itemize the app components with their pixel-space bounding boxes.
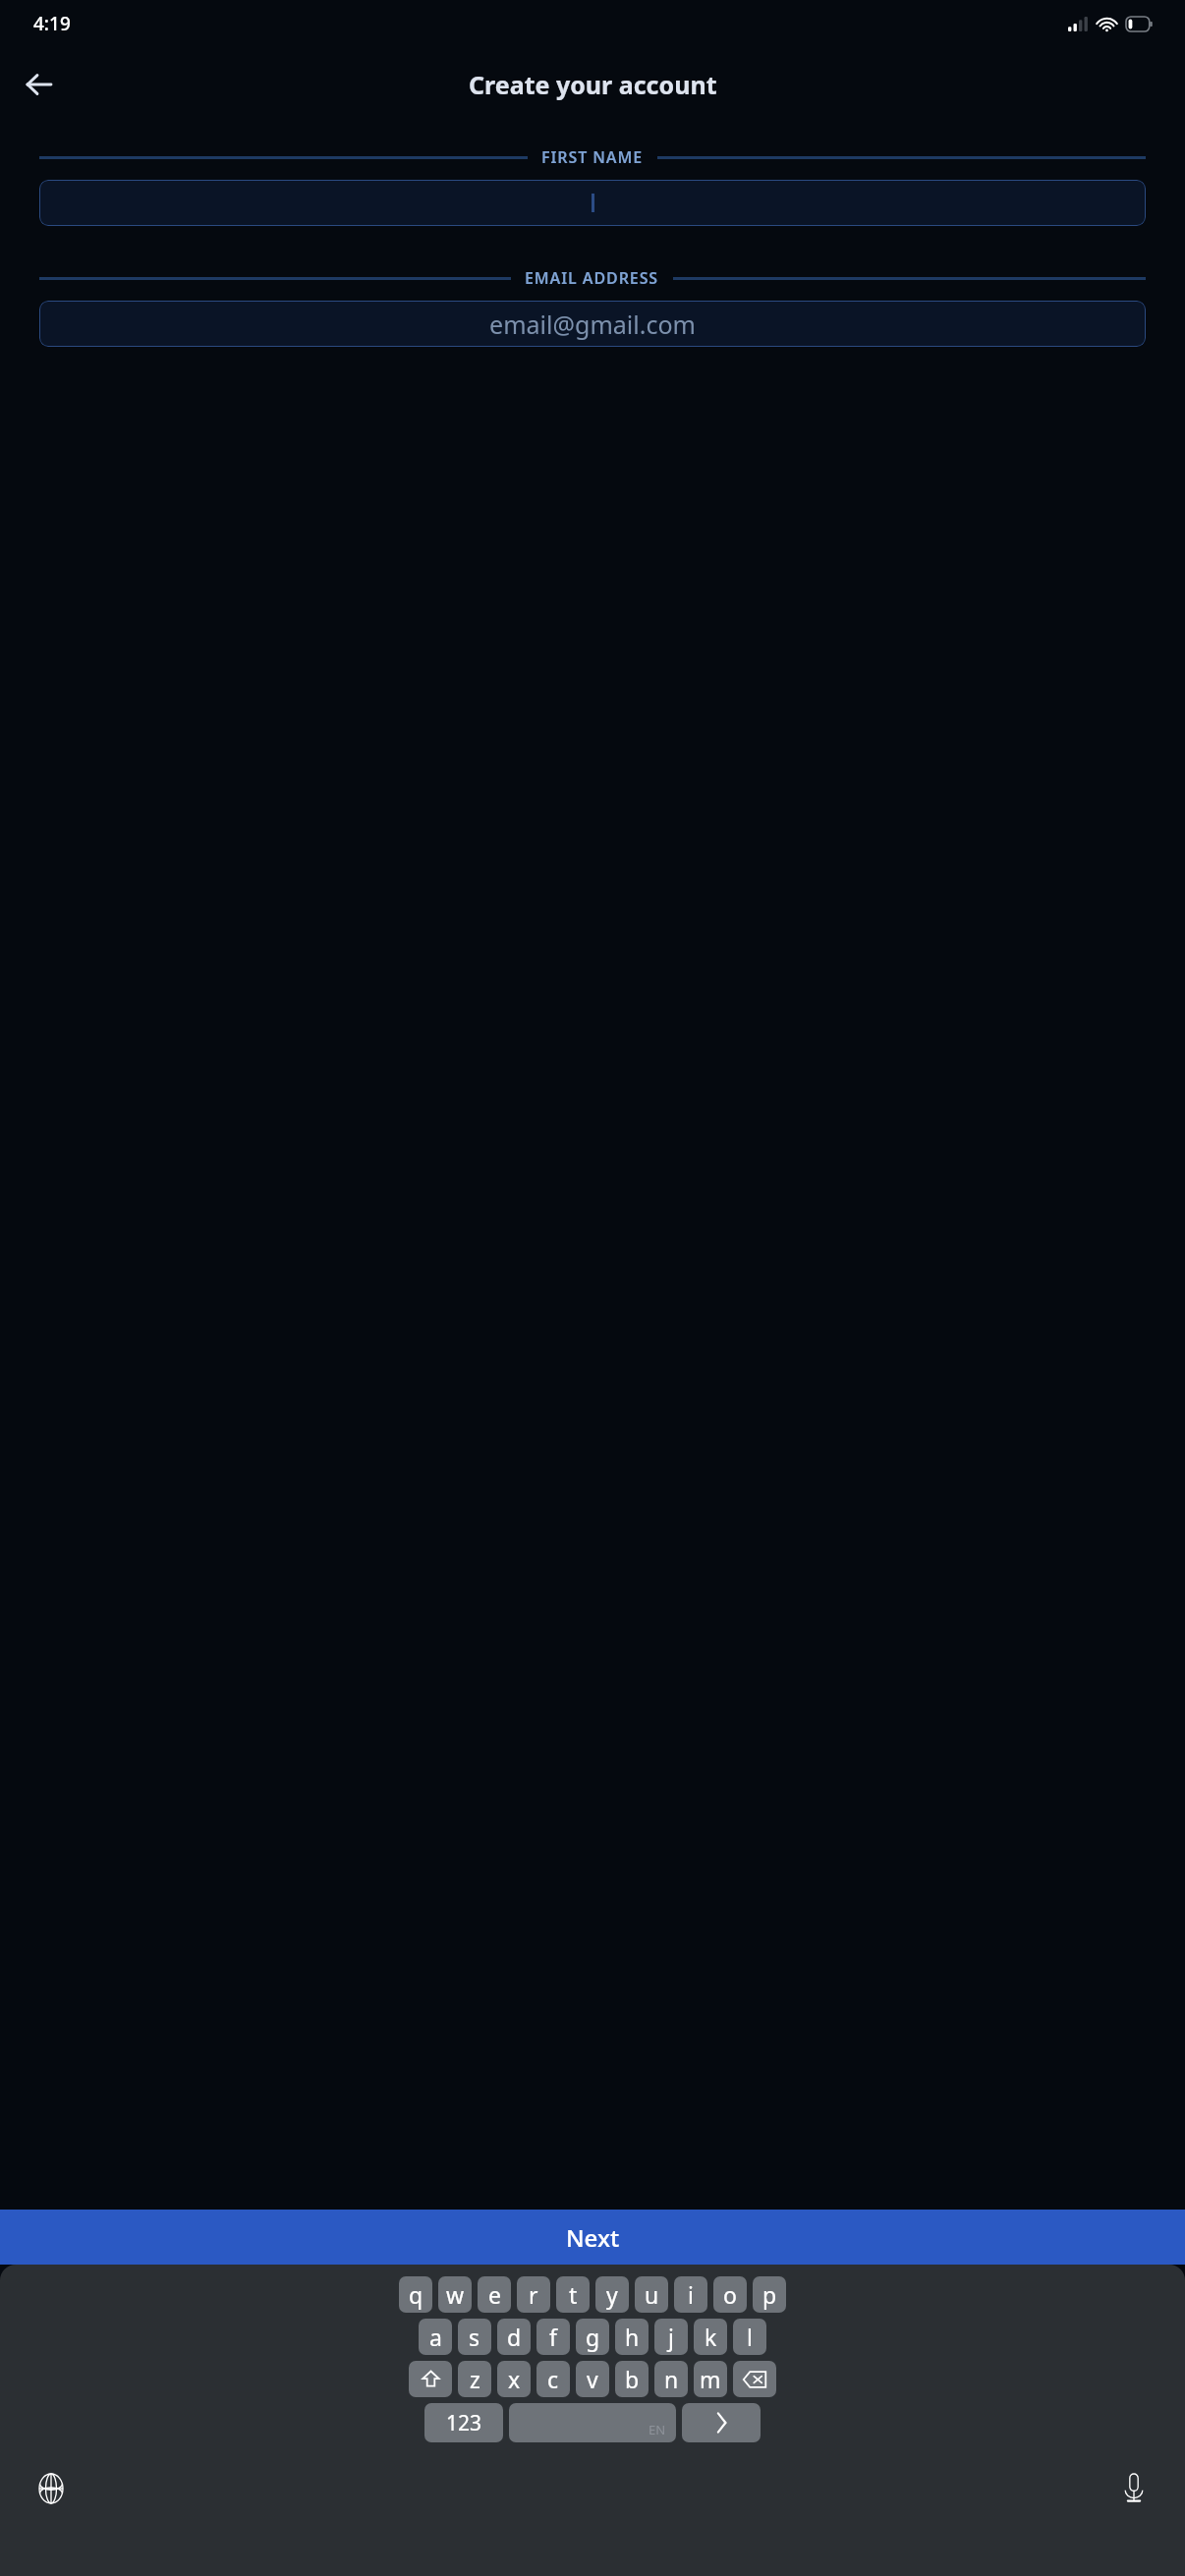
button[interactable]: r (517, 2276, 550, 2313)
button[interactable]: Enter (682, 2403, 761, 2442)
staticText: g (586, 2322, 600, 2352)
staticText: v (587, 2364, 598, 2394)
button[interactable]: l (733, 2319, 766, 2355)
staticText: x (508, 2364, 521, 2394)
button[interactable]: u (635, 2276, 668, 2313)
staticText: e (488, 2279, 501, 2310)
staticText: a (429, 2322, 442, 2352)
button[interactable]: 123 (424, 2403, 503, 2442)
button[interactable]: email@gmail.com (39, 301, 1146, 347)
button[interactable]: d (497, 2319, 531, 2355)
button[interactable]: s (458, 2319, 491, 2355)
staticText: b (625, 2364, 640, 2394)
staticText: y (606, 2279, 618, 2310)
button[interactable]: Shift (409, 2361, 452, 2397)
button[interactable]: Backspace (733, 2361, 776, 2397)
button[interactable]: Next (0, 2210, 1185, 2265)
button[interactable]: x (497, 2361, 531, 2397)
button[interactable]: y (595, 2276, 629, 2313)
button[interactable]: j (654, 2319, 688, 2355)
staticText: o (723, 2279, 737, 2310)
staticText: k (705, 2322, 717, 2352)
button[interactable]: Back (16, 61, 63, 108)
button[interactable]: Change language (28, 2465, 75, 2512)
staticText: 4:19 (33, 11, 71, 36)
button[interactable]: a (419, 2319, 452, 2355)
staticText: t (569, 2279, 578, 2310)
button[interactable]: Space (509, 2403, 676, 2442)
button[interactable]: w (438, 2276, 472, 2313)
button[interactable]: Voice input (1110, 2465, 1157, 2512)
staticText: r (529, 2279, 538, 2310)
staticText: j (668, 2322, 674, 2352)
staticText: i (688, 2279, 694, 2310)
button[interactable]: k (694, 2319, 727, 2355)
button[interactable]: n (654, 2361, 688, 2397)
staticText: n (664, 2364, 679, 2394)
button[interactable]: v (576, 2361, 609, 2397)
staticText: c (547, 2364, 559, 2394)
staticText: Create your account (469, 68, 717, 101)
staticText: FIRST NAME (541, 146, 644, 168)
button[interactable]: f (536, 2319, 570, 2355)
button[interactable]: i (674, 2276, 707, 2313)
button[interactable]: c (536, 2361, 570, 2397)
staticText: f (549, 2322, 557, 2352)
button[interactable]: z (458, 2361, 491, 2397)
staticText: q (409, 2279, 423, 2310)
staticText: u (645, 2279, 659, 2310)
button[interactable]: q (399, 2276, 432, 2313)
staticText: w (446, 2279, 465, 2310)
staticText: z (470, 2364, 480, 2394)
button[interactable]: g (576, 2319, 609, 2355)
staticText: l (747, 2322, 753, 2352)
button[interactable]: h (615, 2319, 649, 2355)
staticText: d (507, 2322, 522, 2352)
button[interactable]: e (478, 2276, 511, 2313)
button[interactable] (39, 180, 1146, 226)
staticText: m (700, 2364, 721, 2394)
staticText: EN (649, 2421, 666, 2438)
button[interactable]: t (556, 2276, 590, 2313)
staticText: h (625, 2322, 640, 2352)
button[interactable]: b (615, 2361, 649, 2397)
button[interactable]: m (694, 2361, 727, 2397)
staticText: s (469, 2322, 480, 2352)
staticText: p (762, 2279, 777, 2310)
staticText: Next (566, 2221, 620, 2254)
button[interactable]: p (753, 2276, 786, 2313)
button[interactable]: o (713, 2276, 747, 2313)
staticText: EMAIL ADDRESS (525, 267, 659, 289)
staticText: email@gmail.com (489, 308, 696, 341)
staticText: 123 (446, 2409, 482, 2437)
